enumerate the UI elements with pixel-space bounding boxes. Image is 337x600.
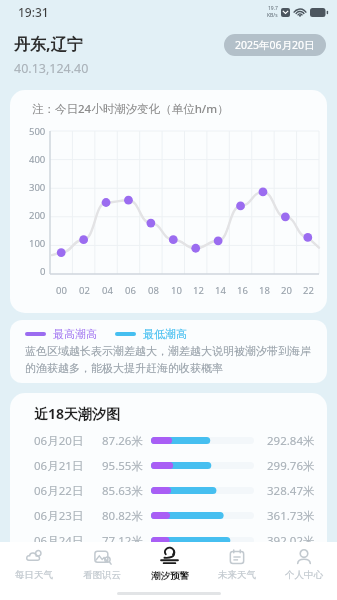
staticText: 77.12米	[102, 533, 143, 549]
staticText: 299.76米	[267, 458, 315, 474]
other: 个人中心	[295, 548, 313, 566]
staticText: 06月21日	[34, 458, 84, 474]
staticText: 06月20日	[34, 433, 84, 449]
staticText: 最低潮高	[143, 327, 187, 341]
staticText: 85.63米	[102, 483, 143, 499]
staticText: 06月25日	[34, 558, 84, 574]
staticText: 00	[56, 284, 67, 297]
staticText: 08	[148, 284, 159, 297]
staticText: 0	[40, 265, 46, 278]
button[interactable]: 06月23日	[10, 503, 327, 528]
staticText: 16	[237, 284, 248, 297]
button[interactable]: 每日天气	[0, 542, 68, 586]
other: 看图识云	[93, 547, 112, 566]
button[interactable]: 看图识云	[68, 542, 136, 586]
staticText: 328.47米	[267, 483, 315, 499]
button[interactable]: 06月22日	[10, 478, 327, 503]
staticText: 300	[29, 181, 46, 194]
button[interactable]: 06月21日	[10, 453, 327, 478]
other: 每日天气	[25, 547, 44, 566]
staticText: 06月23日	[34, 508, 84, 524]
staticText: 最高潮高	[53, 327, 97, 341]
button[interactable]: 06月25日	[10, 553, 327, 578]
staticText: 292.84米	[267, 433, 315, 449]
staticText: 22	[303, 284, 314, 297]
staticText: 14	[215, 284, 226, 297]
staticText: 80.82米	[102, 508, 143, 524]
staticText: 06月24日	[34, 533, 84, 549]
other: 潮汐预警	[159, 546, 180, 567]
staticText: 400	[29, 153, 46, 166]
staticText: 12	[193, 284, 204, 297]
staticText: 04	[102, 284, 113, 297]
staticText: 95.55米	[102, 458, 143, 474]
staticText: 个人中心	[285, 569, 323, 581]
button[interactable]: 06月20日	[10, 428, 327, 453]
staticText: 500	[29, 125, 46, 138]
staticText: 06	[125, 284, 136, 297]
staticText: 看图识云	[83, 569, 121, 581]
staticText: 18	[259, 284, 270, 297]
staticText: 每日天气	[15, 569, 53, 581]
staticText: 近18天潮汐图	[34, 404, 121, 423]
staticText: 注：今日24小时潮汐变化（单位h/m）	[32, 101, 229, 117]
staticText: 19:31	[18, 4, 49, 20]
button[interactable]: 06月24日	[10, 528, 327, 553]
staticText: 40.13,124.40	[14, 60, 89, 77]
staticText: 未来天气	[218, 569, 256, 581]
button[interactable]: 2025年06月20日	[224, 34, 326, 56]
staticText: 蓝色区域越长表示潮差越大，潮差越大说明被潮汐带到海岸的渔获越多，能极大提升赶海的…	[25, 344, 315, 375]
staticText: 2025年06月20日	[235, 38, 315, 52]
staticText: 02	[79, 284, 90, 297]
staticText: 10	[171, 284, 182, 297]
button[interactable]: 未来天气	[203, 542, 270, 586]
staticText: 71.88米	[102, 558, 143, 574]
staticText: 392.02米	[267, 533, 315, 549]
button[interactable]: 个人中心	[270, 542, 337, 586]
staticText: 200	[29, 209, 46, 222]
staticText: 413.11米	[267, 558, 315, 574]
staticText: KB/s	[267, 12, 278, 19]
staticText: 361.73米	[267, 508, 315, 524]
staticText: 19.7	[268, 5, 278, 12]
staticText: 06月22日	[34, 483, 84, 499]
staticText: 潮汐预警	[151, 570, 189, 582]
staticText: 87.26米	[102, 433, 143, 449]
staticText: 丹东,辽宁	[14, 33, 83, 55]
staticText: 100	[29, 237, 46, 250]
other: 未来天气	[228, 548, 246, 566]
staticText: 20	[281, 284, 292, 297]
button[interactable]: 潮汐预警	[136, 542, 203, 586]
